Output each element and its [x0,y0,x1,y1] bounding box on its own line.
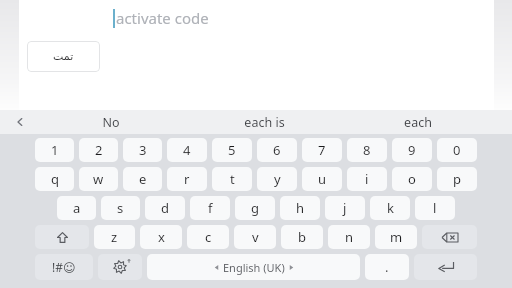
button[interactable]: 6 [257,138,297,162]
staticText: No [102,114,120,131]
staticText: activate code [116,8,209,28]
button[interactable]: q [35,167,74,191]
button[interactable]: z [94,225,135,249]
staticText: e [139,170,147,188]
staticText: 5 [228,141,236,159]
button[interactable]: x [140,225,182,249]
button[interactable]: Settings [98,254,142,280]
staticText: s [117,199,124,217]
staticText: j [343,199,347,217]
staticText: u [318,170,327,188]
staticText: English (UK) [223,260,285,275]
staticText: w [93,170,104,188]
staticText: 9 [408,141,416,159]
button[interactable]: c [187,225,229,249]
staticText: 0 [453,141,461,159]
staticText: c [205,228,212,246]
button[interactable]: u [302,167,342,191]
button[interactable]: English (UK) [147,254,360,280]
staticText: تمت [53,50,74,63]
staticText: q [51,170,59,188]
button[interactable]: each is [188,110,341,134]
staticText: 6 [273,141,281,159]
button[interactable]: b [281,225,323,249]
button[interactable]: 8 [347,138,387,162]
staticText: i [365,170,369,188]
button[interactable]: f [190,196,230,220]
button[interactable]: Backspace [422,225,477,249]
button[interactable]: t [212,167,252,191]
button[interactable]: Enter [414,254,477,280]
button[interactable]: . [365,254,409,280]
staticText: 4 [183,141,191,159]
staticText: 8 [363,141,371,159]
button[interactable]: 0 [437,138,477,162]
button[interactable]: s [101,196,140,220]
staticText: o [408,170,416,188]
staticText: m [390,228,403,246]
button[interactable]: 4 [167,138,207,162]
staticText: y [274,170,281,188]
button[interactable]: each [341,110,494,134]
staticText: h [296,199,305,217]
button[interactable]: 5 [212,138,252,162]
staticText: . [385,258,389,276]
button[interactable]: o [392,167,432,191]
button[interactable]: Symbols and emoji [35,254,93,280]
staticText: 1 [51,141,59,159]
button[interactable]: m [375,225,417,249]
button[interactable]: No [34,110,188,134]
button[interactable]: d [145,196,185,220]
button[interactable]: 9 [392,138,432,162]
button[interactable]: تمت [27,41,100,72]
staticText: l [433,199,437,217]
button[interactable]: j [325,196,365,220]
button[interactable]: p [437,167,477,191]
staticText: r [184,170,190,188]
button[interactable]: g [235,196,275,220]
button[interactable]: k [370,196,410,220]
staticText: g [251,199,259,217]
button[interactable]: 3 [123,138,162,162]
staticText: !#☺ [52,259,76,275]
staticText: z [111,228,118,246]
button[interactable]: h [280,196,320,220]
staticText: t [230,170,235,188]
staticText: d [161,199,169,217]
staticText: 7 [318,141,326,159]
button[interactable]: More suggestions [8,110,32,134]
button[interactable]: e [123,167,162,191]
button[interactable]: v [234,225,276,249]
button[interactable]: Shift [35,225,89,249]
staticText: each is [244,114,285,131]
button[interactable]: 2 [79,138,118,162]
button[interactable]: i [347,167,387,191]
staticText: n [345,228,354,246]
button[interactable]: r [167,167,207,191]
staticText: a [73,199,81,217]
button[interactable]: n [328,225,370,249]
button[interactable]: y [257,167,297,191]
staticText: each [404,114,432,131]
button[interactable]: 1 [35,138,74,162]
staticText: 3 [139,141,147,159]
staticText: v [252,228,259,246]
staticText: p [453,170,461,188]
staticText: b [298,228,306,246]
staticText: 2 [95,141,103,159]
button[interactable]: w [79,167,118,191]
staticText: x [158,228,165,246]
staticText: k [387,199,394,217]
button[interactable]: l [415,196,455,220]
button[interactable]: 7 [302,138,342,162]
staticText: f [208,199,213,217]
button[interactable]: a [57,196,96,220]
